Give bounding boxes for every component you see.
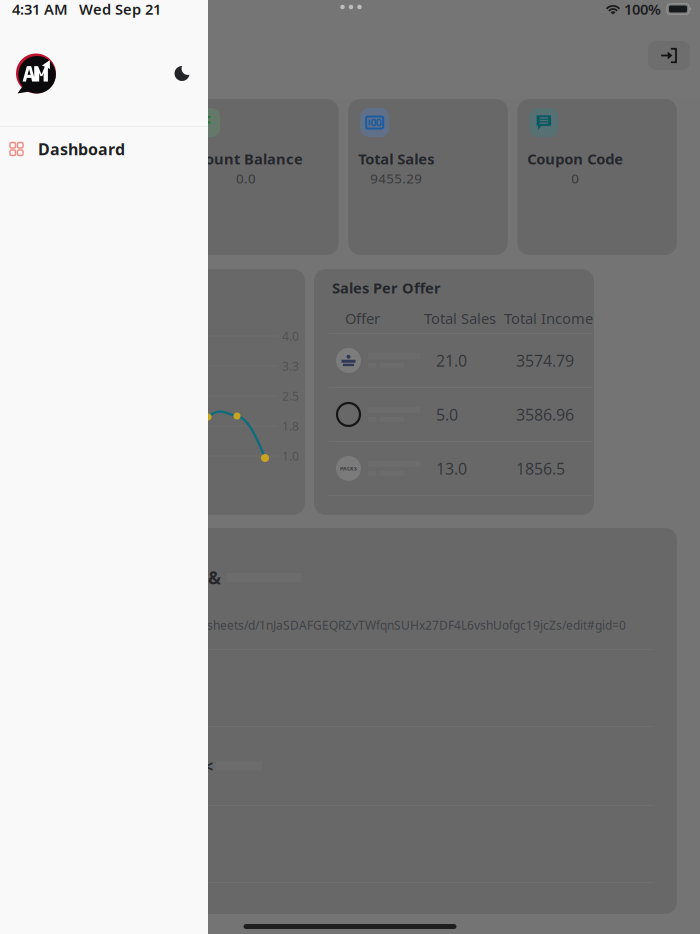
- staticText: 3586.96: [516, 404, 574, 425]
- staticText: 4:31 AM: [12, 0, 68, 19]
- staticText: Offer: [345, 308, 380, 328]
- button[interactable]: Log out: [648, 41, 690, 70]
- staticText: 4.0: [282, 328, 299, 344]
- button[interactable]: Toggle dark mode: [174, 65, 208, 81]
- staticText: <: [204, 755, 213, 776]
- button[interactable]: AM home: [0, 53, 56, 93]
- staticText: 2.5: [282, 388, 299, 404]
- staticText: dsheets/d/1nJaSDAFGEQRZvTWfqnSUHx27DF4L6…: [200, 617, 626, 633]
- staticText: 21.0: [436, 350, 467, 371]
- button[interactable]: Dashboard: [0, 127, 208, 171]
- staticText: 1856.5: [516, 458, 565, 479]
- staticText: 0: [571, 169, 579, 187]
- staticText: 9455.29: [370, 169, 422, 187]
- staticText: 1.8: [282, 418, 299, 434]
- staticText: Total Sales: [424, 308, 496, 328]
- staticText: 3574.79: [516, 350, 574, 371]
- staticText: 0.0: [236, 169, 256, 187]
- staticText: PACKS: [340, 465, 357, 472]
- staticText: Coupon Code: [527, 149, 623, 168]
- staticText: 5.0: [436, 404, 458, 425]
- staticText: 1.0: [282, 448, 299, 464]
- staticText: ccount Balance: [189, 149, 303, 168]
- staticText: 3.3: [282, 358, 299, 374]
- staticText: Total Sales: [358, 149, 434, 168]
- staticText: Total Income: [504, 308, 593, 328]
- staticText: Sales Per Offer: [332, 278, 441, 297]
- staticText: 13.0: [436, 458, 467, 479]
- staticText: 100%: [624, 0, 661, 19]
- staticText: &: [208, 566, 221, 589]
- staticText: Dashboard: [38, 138, 125, 160]
- staticText: Wed Sep 21: [79, 0, 161, 19]
